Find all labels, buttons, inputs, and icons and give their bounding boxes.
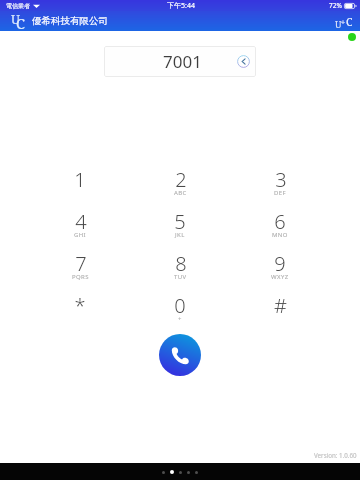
staticText: 電信業者	[6, 2, 30, 10]
staticText: DEF	[274, 189, 287, 197]
staticText: JKL	[175, 231, 185, 239]
button[interactable]: Backspace	[237, 55, 250, 68]
staticText: 3	[275, 166, 287, 193]
staticText: GHI	[74, 231, 87, 239]
button[interactable]: *	[30, 285, 130, 327]
staticText: 7001	[163, 50, 202, 73]
staticText: 8	[175, 250, 187, 277]
staticText: 9	[274, 250, 286, 277]
button[interactable]: 5	[130, 201, 230, 243]
button[interactable]: 0	[130, 285, 230, 327]
staticText: 4	[75, 208, 87, 235]
staticText: U	[335, 18, 342, 30]
staticText: PQRS	[72, 273, 89, 281]
staticText: U	[11, 11, 20, 28]
staticText: TUV	[174, 273, 187, 281]
staticText: +	[178, 315, 182, 323]
button[interactable]: 2	[130, 159, 230, 201]
button[interactable]: Call	[159, 334, 201, 376]
button[interactable]: #	[230, 285, 330, 327]
button[interactable]: 7	[30, 243, 130, 285]
staticText: 5	[174, 208, 186, 235]
staticText: 優希科技有限公司	[32, 15, 108, 27]
staticText: C	[16, 13, 25, 31]
staticText: MNO	[272, 231, 288, 239]
button[interactable]: 6	[230, 201, 330, 243]
button[interactable]: 8	[130, 243, 230, 285]
button[interactable]: 3	[230, 159, 330, 201]
button[interactable]: 9	[230, 243, 330, 285]
staticText: #	[274, 292, 287, 319]
staticText: 0	[174, 292, 186, 319]
button[interactable]: 4	[30, 201, 130, 243]
staticText: WXYZ	[271, 273, 289, 281]
staticText: 1	[74, 166, 86, 193]
staticText: Version: 1.0.60	[314, 451, 357, 459]
staticText: 72%	[329, 1, 342, 10]
staticText: 6	[274, 208, 286, 235]
button[interactable]: 1	[30, 159, 130, 201]
staticText: ABC	[174, 189, 187, 197]
staticText: 下午5:44	[167, 1, 195, 11]
staticText: +	[341, 18, 346, 28]
staticText: C	[346, 14, 352, 27]
staticText: 7	[75, 250, 87, 277]
staticText: 2	[175, 166, 187, 193]
staticText: *	[74, 292, 86, 319]
